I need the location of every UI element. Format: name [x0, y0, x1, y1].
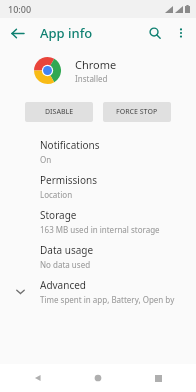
staticText: Location: [40, 189, 73, 200]
staticText: Notifications: [40, 138, 100, 152]
button[interactable]: Back: [5, 21, 29, 45]
staticText: On: [40, 154, 52, 165]
staticText: Time spent in app, Battery, Open by defa…: [40, 294, 188, 305]
button[interactable]: Storage: [0, 204, 196, 239]
button[interactable]: More options: [168, 20, 194, 46]
staticText: DISABLE: [45, 107, 74, 117]
button[interactable]: Notifications: [0, 134, 196, 169]
staticText: Storage: [40, 208, 77, 222]
staticText: Advanced: [40, 278, 86, 292]
staticText: Chrome: [75, 57, 117, 72]
staticText: No data used: [40, 259, 91, 270]
button[interactable]: Recent apps: [136, 364, 180, 392]
button[interactable]: Search: [142, 20, 168, 46]
button[interactable]: DISABLE: [25, 102, 93, 122]
staticText: App info: [40, 24, 93, 42]
button[interactable]: Back: [16, 364, 60, 392]
staticText: Data usage: [40, 243, 94, 257]
button[interactable]: Advanced: [0, 274, 196, 309]
button[interactable]: FORCE STOP: [103, 102, 171, 122]
staticText: FORCE STOP: [116, 107, 158, 117]
staticText: Permissions: [40, 173, 97, 187]
button[interactable]: Chrome: [0, 48, 196, 92]
button[interactable]: Home: [76, 364, 120, 392]
staticText: 163 MB used in internal storage: [40, 224, 160, 235]
staticText: Installed: [75, 73, 108, 84]
button[interactable]: Data usage: [0, 239, 196, 274]
staticText: 10:00: [8, 3, 32, 15]
button[interactable]: Permissions: [0, 169, 196, 204]
